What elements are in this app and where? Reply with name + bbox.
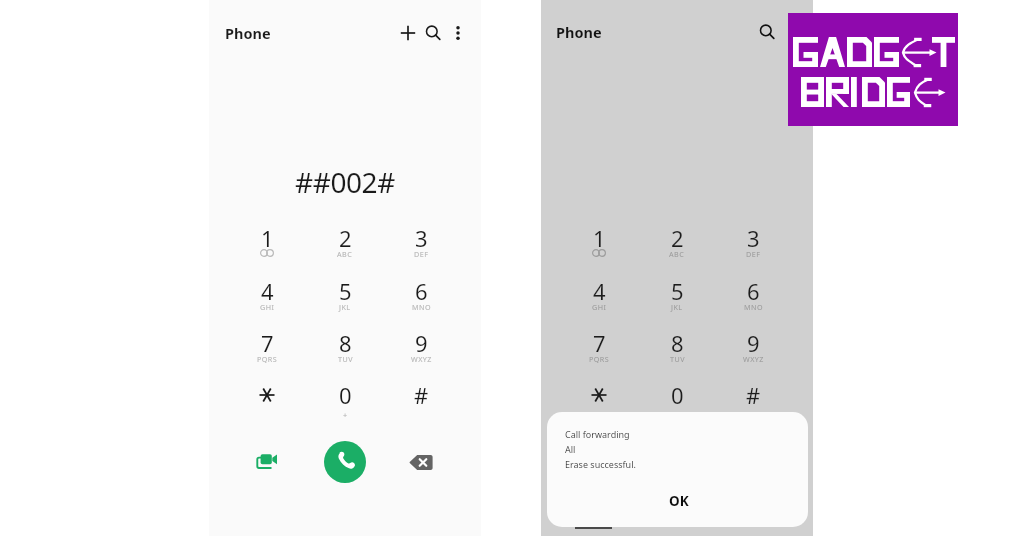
staticText: PQRS xyxy=(589,354,610,364)
staticText: 5 xyxy=(339,276,352,306)
staticText: ABC xyxy=(669,249,685,259)
staticText: MNO xyxy=(412,302,431,312)
staticText: 9 xyxy=(415,328,428,358)
staticText: GHI xyxy=(260,302,275,312)
staticText: # xyxy=(414,380,429,410)
button[interactable]: 0 xyxy=(315,380,375,426)
staticText: 2 xyxy=(339,223,352,253)
button[interactable]: # xyxy=(391,380,451,426)
staticText: TUV xyxy=(338,354,353,364)
staticText: WXYZ xyxy=(743,354,764,364)
staticText: 7 xyxy=(261,328,274,358)
button[interactable]: Call xyxy=(324,441,366,483)
button[interactable]: 5 xyxy=(315,276,375,322)
staticText: 5 xyxy=(671,276,684,306)
button[interactable]: 6 xyxy=(723,276,783,322)
staticText: WXYZ xyxy=(411,354,432,364)
staticText: + xyxy=(675,410,680,420)
button[interactable]: 1 xyxy=(237,223,297,269)
staticText: 0 xyxy=(671,380,684,410)
button[interactable]: Video call xyxy=(251,447,283,479)
staticText: Phone xyxy=(556,22,602,42)
button[interactable] xyxy=(237,380,297,426)
button[interactable] xyxy=(569,380,629,426)
staticText: 4 xyxy=(593,276,606,306)
staticText: GHI xyxy=(592,302,607,312)
button[interactable]: 4 xyxy=(237,276,297,322)
button[interactable]: Search xyxy=(757,22,777,42)
button[interactable]: 6 xyxy=(391,276,451,322)
button[interactable]: 2 xyxy=(315,223,375,269)
staticText: 0 xyxy=(339,380,352,410)
button[interactable]: 7 xyxy=(569,328,629,374)
staticText: MNO xyxy=(744,302,763,312)
button[interactable]: 9 xyxy=(391,328,451,374)
button[interactable]: 1 xyxy=(569,223,629,269)
button[interactable]: 3 xyxy=(723,223,783,269)
staticText: OK xyxy=(669,492,689,510)
button[interactable]: 0 xyxy=(647,380,707,426)
staticText: Call forwarding xyxy=(565,428,630,440)
button[interactable]: # xyxy=(723,380,783,426)
staticText: 7 xyxy=(593,328,606,358)
button[interactable]: 8 xyxy=(647,328,707,374)
button[interactable]: Phone xyxy=(548,16,610,48)
button[interactable]: 5 xyxy=(647,276,707,322)
staticText: Phone xyxy=(225,23,271,43)
button[interactable]: 8 xyxy=(315,328,375,374)
button[interactable]: 4 xyxy=(569,276,629,322)
staticText: TUV xyxy=(670,354,685,364)
staticText: 4 xyxy=(261,276,274,306)
staticText: 9 xyxy=(747,328,760,358)
staticText: + xyxy=(343,410,348,420)
staticText: 8 xyxy=(671,328,684,358)
button[interactable]: More options xyxy=(448,23,468,43)
staticText: 3 xyxy=(415,223,428,253)
staticText: 6 xyxy=(415,276,428,306)
staticText: PQRS xyxy=(257,354,278,364)
staticText: 3 xyxy=(747,223,760,253)
staticText: DEF xyxy=(746,249,761,259)
staticText: 6 xyxy=(747,276,760,306)
button[interactable]: 9 xyxy=(723,328,783,374)
button[interactable]: Backspace xyxy=(405,446,437,478)
button[interactable]: Search xyxy=(423,23,443,43)
button[interactable]: Add contact xyxy=(398,23,418,43)
staticText: All xyxy=(565,443,576,455)
staticText: ##002# xyxy=(295,163,395,201)
staticText: 1 xyxy=(261,223,274,253)
staticText: # xyxy=(746,380,761,410)
button[interactable]: 7 xyxy=(237,328,297,374)
staticText: 8 xyxy=(339,328,352,358)
button[interactable]: OK xyxy=(655,488,703,514)
button[interactable]: 3 xyxy=(391,223,451,269)
staticText: 2 xyxy=(671,223,684,253)
button[interactable]: 2 xyxy=(647,223,707,269)
button[interactable]: Phone xyxy=(217,17,279,49)
staticText: JKL xyxy=(671,302,683,312)
staticText: 1 xyxy=(593,223,606,253)
staticText: JKL xyxy=(339,302,351,312)
staticText: DEF xyxy=(414,249,429,259)
staticText: Erase successful. xyxy=(565,458,636,470)
staticText: ABC xyxy=(337,249,353,259)
